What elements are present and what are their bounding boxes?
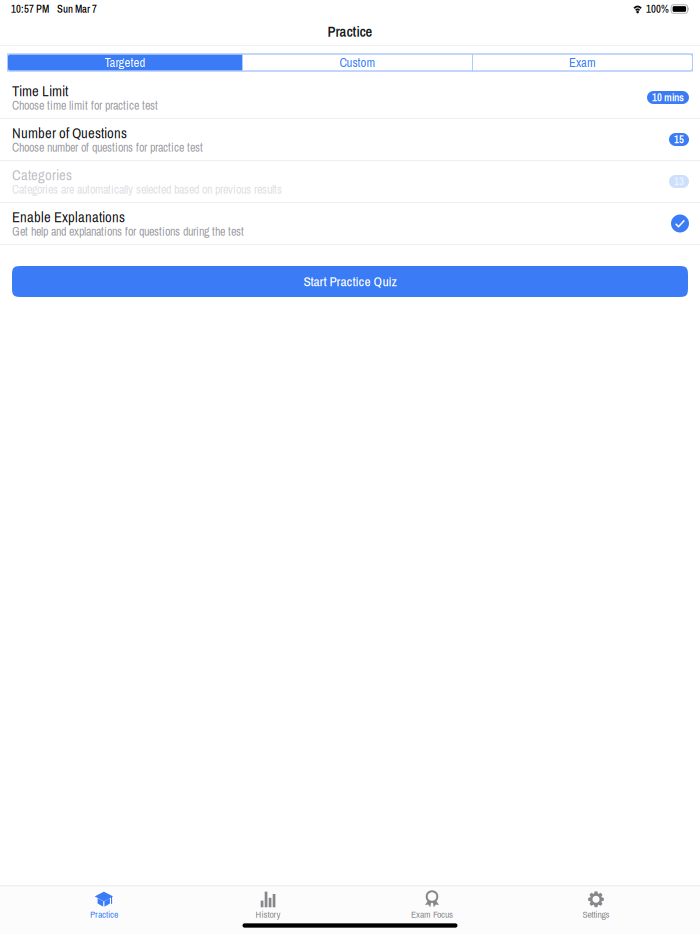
button[interactable]: Number of Questions [0, 119, 700, 160]
staticText: Settings [582, 908, 609, 921]
staticText: Exam Focus [411, 908, 453, 921]
button[interactable]: Targeted [7, 54, 242, 71]
staticText: 100% [646, 2, 669, 16]
staticText: Choose time limit for practice test [12, 97, 158, 114]
staticText: Practice [327, 22, 372, 41]
staticText: Enable Explanations [12, 207, 125, 227]
button[interactable]: Start Practice Quiz [12, 266, 688, 297]
staticText: Categories [12, 165, 72, 185]
staticText: Number of Questions [12, 123, 127, 143]
button[interactable]: Exam Focus [350, 891, 514, 919]
staticText: 10 mins [652, 90, 684, 105]
staticText: Time Limit [12, 81, 68, 101]
button[interactable]: Custom [242, 54, 472, 71]
button[interactable]: Exam [472, 54, 692, 71]
button[interactable]: Time Limit [0, 77, 700, 118]
button[interactable]: Settings [514, 891, 678, 919]
staticText: Exam [569, 54, 596, 71]
staticText: Get help and explanations for questions … [12, 223, 244, 240]
staticText: 15 [674, 132, 684, 147]
staticText: 13 [674, 174, 684, 189]
staticText: History [255, 908, 280, 921]
staticText: 10:57 PM [11, 2, 49, 16]
staticText: Practice [90, 908, 118, 921]
staticText: Categories are automatically selected ba… [12, 181, 282, 198]
staticText: Sun Mar 7 [57, 2, 97, 16]
button[interactable]: Practice [22, 891, 186, 919]
button[interactable]: History [186, 891, 350, 919]
button[interactable]: Enable Explanations [0, 203, 700, 244]
staticText: Custom [339, 54, 375, 71]
staticText: Choose number of questions for practice … [12, 139, 203, 156]
button[interactable]: Categories [0, 161, 700, 202]
staticText: Start Practice Quiz [303, 272, 396, 290]
staticText: Targeted [104, 54, 145, 71]
